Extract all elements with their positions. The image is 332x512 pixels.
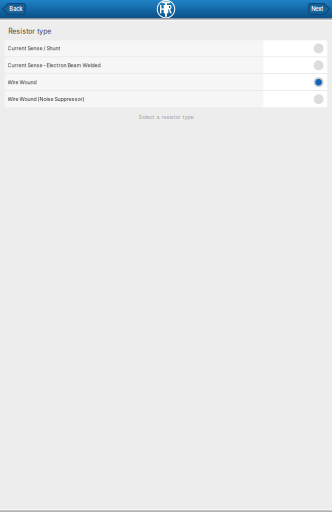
button[interactable]: Current Sense - Electron Beam Welded: [5, 57, 327, 73]
button[interactable]: Wire Wound (Noise Suppressor): [5, 91, 327, 107]
button[interactable]: Wire Wound: [5, 74, 327, 90]
button[interactable]: Current Sense / Shunt: [5, 40, 327, 57]
staticText: Next: [311, 5, 323, 12]
staticText: Current Sense / Shunt: [8, 45, 61, 52]
staticText: Wire Wound: [8, 79, 37, 85]
staticText: Resistor type: [8, 27, 51, 35]
staticText: Wire Wound (Noise Suppressor): [8, 96, 85, 102]
staticText: Current Sense - Electron Beam Welded: [8, 62, 101, 69]
staticText: Back: [9, 5, 22, 12]
button[interactable]: Next: [309, 4, 329, 14]
button[interactable]: Back: [3, 4, 25, 14]
staticText: Select a resistor type: [138, 114, 193, 120]
